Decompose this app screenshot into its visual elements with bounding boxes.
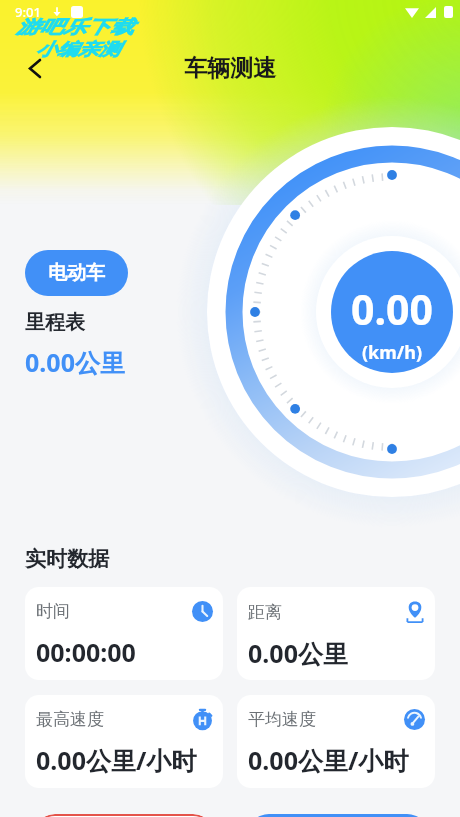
staticText: 小编亲测 (36, 39, 119, 60)
staticText: 平均速度 (248, 709, 316, 730)
staticText: 时间 (36, 601, 70, 622)
staticText: (km/h) (362, 340, 423, 365)
staticText: 9:01 (15, 3, 41, 21)
button[interactable]: 时间 (25, 587, 223, 680)
staticText: 游吧乐下载 (16, 16, 134, 38)
button[interactable]: 结束 (33, 814, 215, 817)
button[interactable]: 平均速度 (237, 695, 435, 788)
staticText: 0.00公里/小时 (36, 743, 197, 777)
button[interactable]: 最高速度 (25, 695, 223, 788)
staticText: 0.00公里 (248, 636, 348, 670)
staticText: 00:00:00 (36, 635, 136, 669)
staticText: 0.00公里/小时 (248, 743, 409, 777)
button[interactable]: 距离 (237, 587, 435, 680)
staticText: 电动车 (48, 261, 105, 285)
button[interactable]: Back (18, 51, 52, 85)
staticText: 0.00公里 (25, 345, 125, 379)
staticText: 实时数据 (25, 546, 109, 572)
staticText: 车辆测速 (184, 54, 276, 83)
staticText: 最高速度 (36, 709, 104, 730)
staticText: 里程表 (25, 310, 85, 335)
button[interactable]: 电动车 (25, 250, 128, 296)
staticText: 0.00 (351, 281, 433, 337)
button[interactable]: 开始 (247, 814, 429, 817)
staticText: 距离 (248, 602, 282, 623)
